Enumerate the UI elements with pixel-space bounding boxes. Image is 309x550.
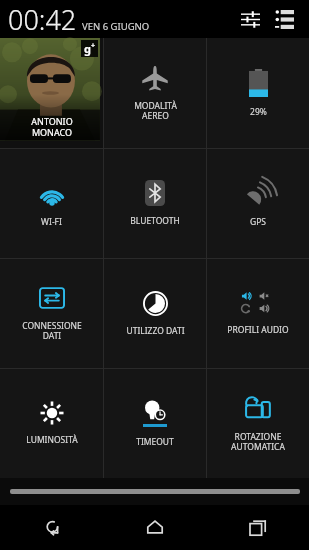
staticText: LUMINOSITÀ	[26, 434, 78, 446]
staticText: ROTAZIONE AUTOMATICA	[231, 431, 285, 453]
staticText: PROFILI AUDIO	[227, 324, 289, 336]
staticText: UTILIZZO DATI	[126, 325, 185, 337]
staticText: MODALITÀ AEREO	[134, 100, 177, 122]
button[interactable]: GPS	[207, 149, 309, 258]
button[interactable]: Indietro	[0, 505, 103, 550]
button[interactable]: Antonio Monaco	[0, 38, 103, 148]
button[interactable]: Home	[103, 505, 206, 550]
staticText: +	[91, 41, 96, 51]
button[interactable]: TIMEOUT	[104, 369, 206, 478]
button[interactable]: Impostazioni	[235, 4, 265, 34]
staticText: 29%	[250, 106, 267, 118]
staticText: BLUETOOTH	[130, 215, 180, 227]
staticText: GPS	[250, 216, 266, 228]
button[interactable]: Chiudi pannello	[0, 478, 309, 505]
staticText: 00:42	[8, 1, 77, 38]
button[interactable]: MODALITÀ AEREO	[104, 38, 206, 148]
button[interactable]: Recenti	[206, 505, 309, 550]
staticText: g	[84, 41, 91, 56]
button[interactable]: 29%	[207, 38, 309, 148]
button[interactable]: WI-FI	[0, 149, 103, 258]
staticText: ANTONIO MONACO	[31, 115, 73, 138]
button[interactable]: BLUETOOTH	[104, 149, 206, 258]
staticText: WI-FI	[41, 216, 62, 228]
button[interactable]: LUMINOSITÀ	[0, 369, 103, 478]
staticText: CONNESSIONE DATI	[22, 320, 82, 342]
button[interactable]: UTILIZZO DATI	[104, 259, 206, 368]
button[interactable]: PROFILI AUDIO	[207, 259, 309, 368]
button[interactable]: Notifiche	[269, 4, 299, 34]
staticText: VEN 6 GIUGNO	[82, 20, 150, 33]
button[interactable]: CONNESSIONE DATI	[0, 259, 103, 368]
staticText: TIMEOUT	[136, 436, 174, 448]
button[interactable]: ROTAZIONE AUTOMATICA	[207, 369, 309, 478]
